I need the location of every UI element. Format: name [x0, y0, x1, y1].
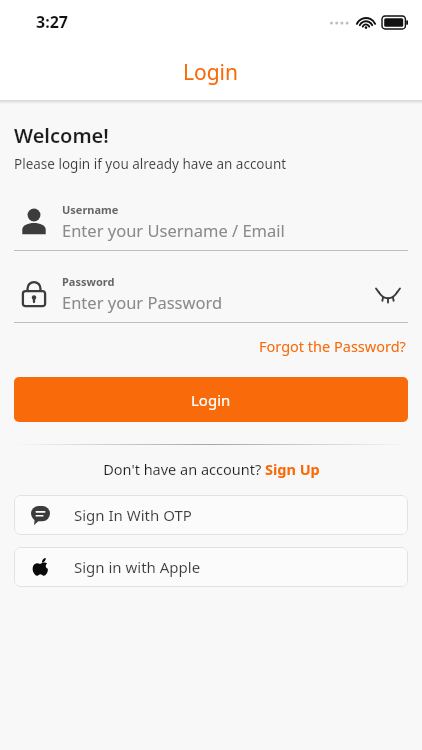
staticText: Sign In With OTP [74, 505, 192, 525]
button[interactable]: Username [14, 201, 408, 251]
button[interactable]: Password [14, 273, 408, 323]
staticText: Enter your Password [62, 291, 223, 313]
button[interactable]: Sign in with OTP [14, 495, 408, 535]
staticText: 3:27 [36, 11, 68, 33]
button[interactable]: Don't have an account? Sign Up [103, 459, 320, 479]
staticText: Enter your Username / Email [62, 219, 285, 241]
staticText: Password [62, 274, 115, 289]
button[interactable]: Sign in with Apple [14, 547, 408, 587]
other: Username [19, 206, 49, 236]
button[interactable]: Forgot the Password? [257, 333, 408, 359]
other: Sign in with Apple [31, 558, 49, 576]
other: Sign in with OTP [31, 506, 50, 525]
button[interactable]: Login [14, 377, 408, 422]
staticText: Don't have an account? Sign Up [103, 459, 320, 479]
staticText: Login [191, 390, 231, 410]
staticText: Welcome! [14, 122, 109, 149]
other: Password [19, 278, 49, 308]
staticText: Login [183, 58, 239, 87]
button[interactable]: Show password [368, 273, 408, 313]
staticText: Please login if you already have an acco… [14, 155, 287, 173]
staticText: Forgot the Password? [259, 336, 406, 356]
staticText: Sign in with Apple [74, 557, 201, 577]
staticText: Username [62, 202, 119, 217]
